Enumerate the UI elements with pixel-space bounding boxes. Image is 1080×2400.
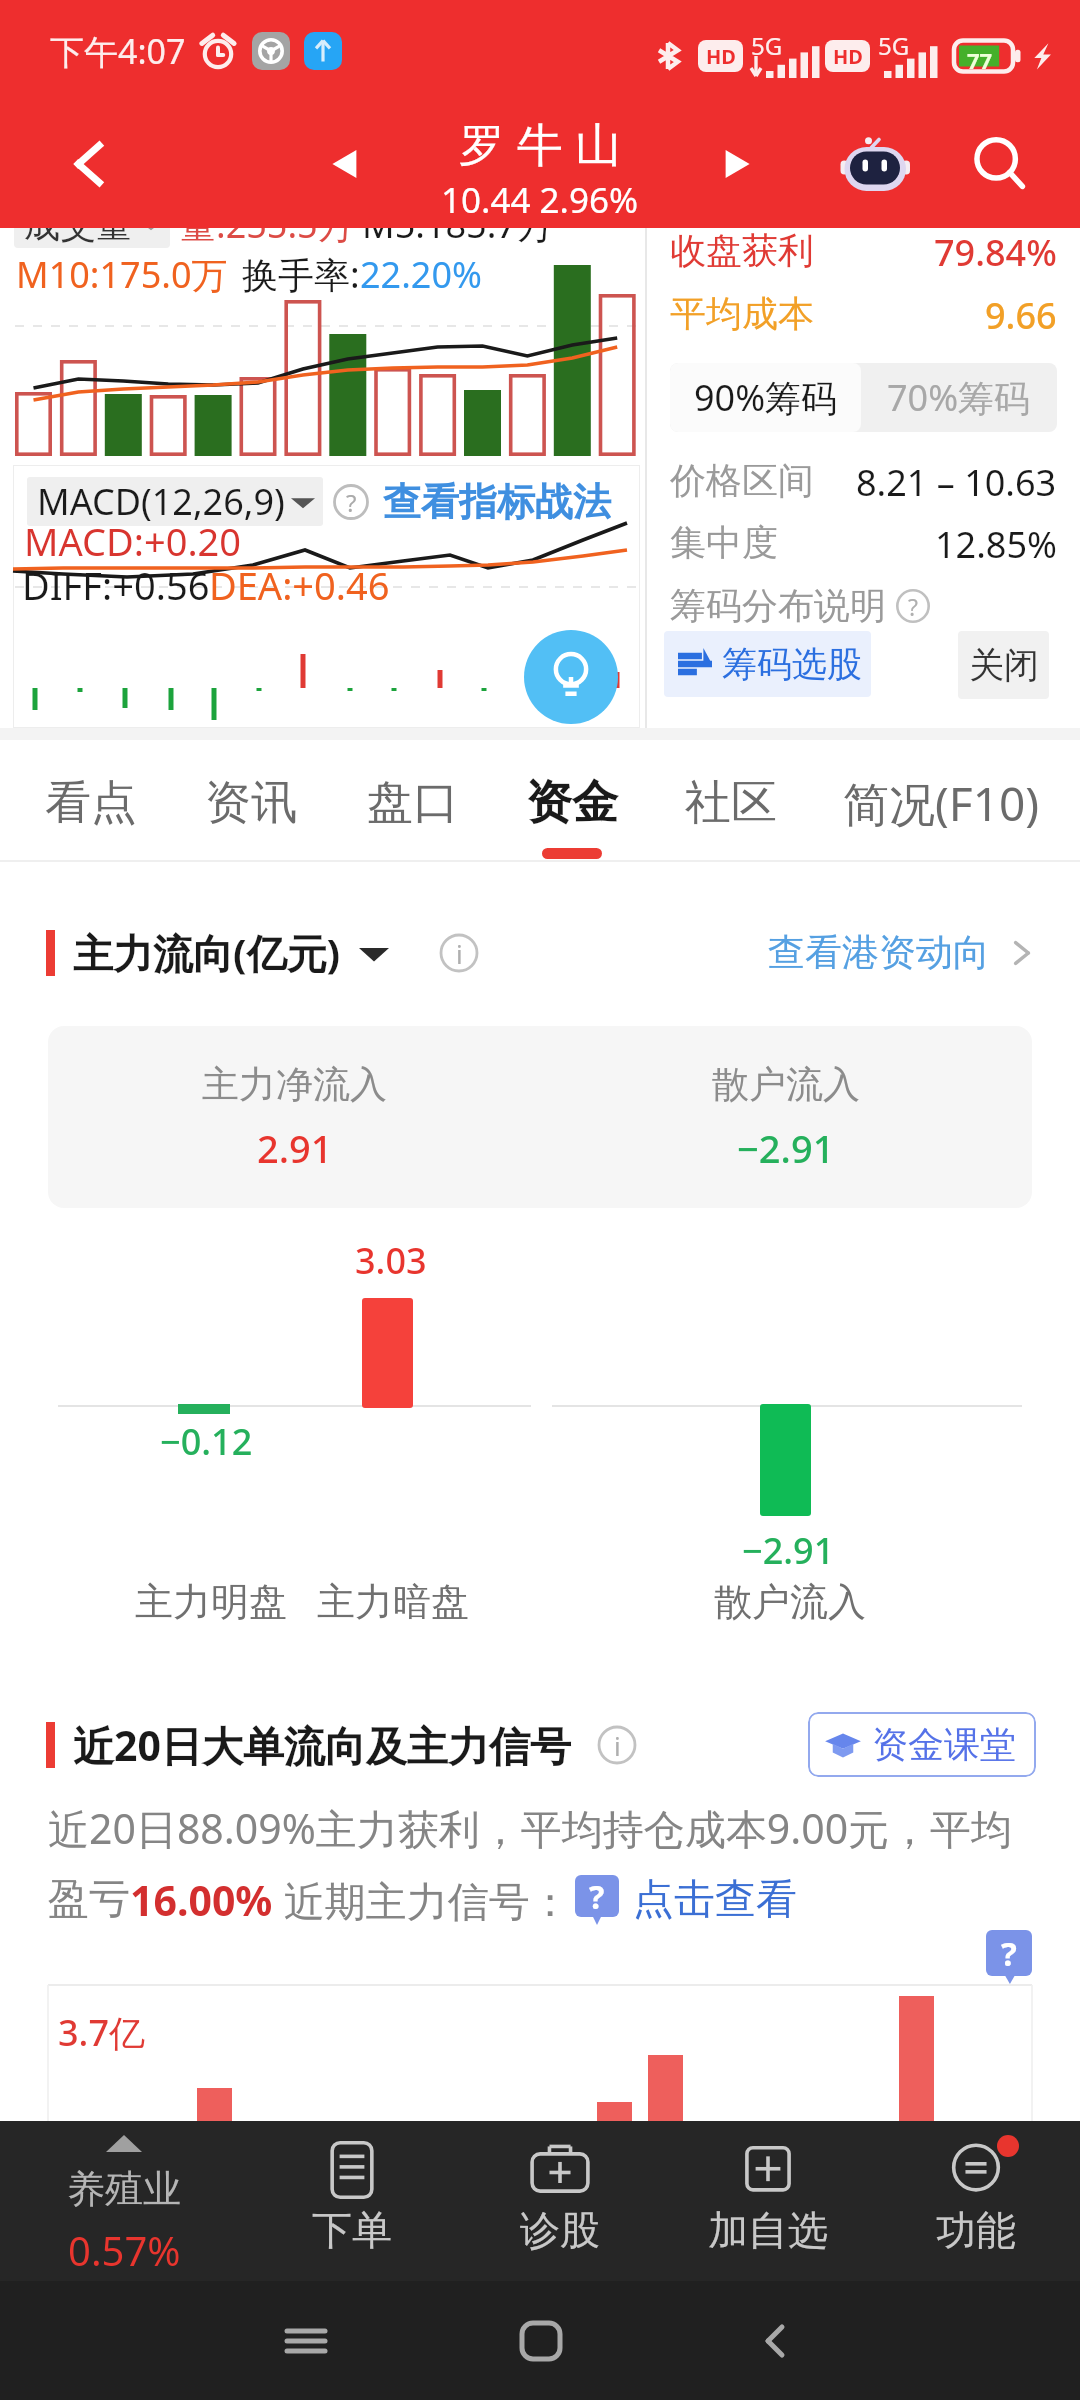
staticText: 查看港资动向 [768,929,990,976]
staticText: M10:175.0万 [16,250,228,299]
staticText: 简况(F10) [843,772,1040,835]
button[interactable]: 看点 [16,740,166,862]
staticText: 量:255.5万 [180,200,354,249]
staticText: MACD:+0.20 [24,515,242,567]
button[interactable]: Tips [524,630,618,724]
staticText: 诊股 [520,2205,600,2255]
staticText: 资讯 [205,774,297,832]
staticText: 3.03 [355,1236,427,1285]
button[interactable]: Recents [188,2281,423,2400]
button[interactable]: Home [423,2281,658,2400]
staticText: 下单 [312,2205,392,2255]
staticText: HD [833,43,863,70]
button[interactable]: 盘口 [338,740,488,862]
staticText: −0.12 [160,1417,253,1466]
button[interactable]: 资金课堂 [808,1712,1036,1777]
staticText: 10.44 2.96% [441,176,639,224]
button[interactable]: 下单 [248,2121,456,2281]
staticText: 3.7亿 [58,2008,145,2057]
button[interactable]: 90%筹码 [670,363,861,432]
button[interactable]: 资讯 [176,740,326,862]
staticText: 主力流向(亿元) [73,925,341,980]
staticText: 主力净流入 [202,1061,387,1108]
button[interactable]: Next stock [690,118,782,210]
staticText: i [456,936,463,971]
staticText: 看点 [45,774,137,832]
staticText: −2.91 [737,1122,835,1174]
staticText: 盘口 [367,774,459,832]
staticText: 0.57% [68,2223,181,2277]
staticText: 22.20% [360,250,482,299]
button[interactable]: Search [948,112,1052,216]
staticText: 社区 [685,774,777,832]
button[interactable]: 查看港资动向 [768,929,1042,976]
staticText: 散户流入 [714,1578,866,1626]
button[interactable]: 70%筹码 [861,363,1057,432]
button[interactable]: 关闭 [958,631,1049,699]
button[interactable]: 诊股 [456,2121,664,2281]
staticText: 罗 牛 山 [459,112,621,175]
button[interactable]: 简况(F10) [836,740,1046,862]
button[interactable]: AI assistant [815,104,935,224]
staticText: DEA:+0.46 [209,559,390,611]
button[interactable]: Back [658,2281,893,2400]
button[interactable]: 资金 [497,740,647,862]
button[interactable]: 筹码选股 [664,631,871,697]
staticText: 查看指标战法 [383,478,611,526]
staticText: −2.91 [742,1526,835,1575]
button[interactable]: Back [0,100,180,228]
staticText: 70%筹码 [887,373,1031,422]
staticText: 养殖业 [67,2165,181,2213]
staticText: 12.85% [935,520,1057,569]
staticText: 近20日大单流向及主力信号 [73,1717,571,1773]
staticText: 8.21 – 10.63 [856,458,1057,507]
staticText: 主力暗盘 [317,1578,469,1626]
staticText: 换手率: [242,250,360,299]
staticText: 下午4:07 [50,28,186,74]
staticText: 点击查看 [633,1874,797,1926]
staticText: 功能 [936,2205,1016,2255]
staticText: ? [1001,1931,1017,1976]
staticText: 近20日88.09%主力获利，平均持仓成本9.00元，平均 [48,1800,1013,1856]
staticText: 90%筹码 [694,373,838,422]
staticText: 关闭 [969,643,1039,687]
staticText: ? [589,1875,605,1917]
staticText: 散户流入 [712,1061,860,1108]
staticText: 平均成本 [670,291,814,336]
button[interactable]: 功能 [872,2121,1080,2281]
staticText: MACD(12,26,9) [37,477,285,526]
staticText: ? [908,591,918,622]
staticText: 价格区间 [670,458,814,503]
staticText: 79.84% [934,228,1057,277]
staticText: 5G [878,29,910,62]
staticText: 筹码选股 [722,642,862,686]
staticText: DIFF:+0.56 [22,559,210,611]
staticText: HD [706,43,736,70]
staticText: 盈亏 [48,1874,130,1926]
staticText: 16.00% [130,1872,273,1928]
button[interactable]: Help [986,1930,1032,1976]
staticText: 近期主力信号： [273,1872,571,1928]
staticText: 筹码分布说明 [670,583,886,628]
button[interactable]: 养殖业 [0,2121,248,2281]
staticText: 集中度 [670,520,778,565]
staticText: i [614,1728,621,1763]
staticText: 77 [967,45,993,75]
staticText: 5G [751,29,783,62]
staticText: 资金课堂 [872,1722,1016,1767]
staticText: 成交量 [24,202,132,247]
button[interactable]: 社区 [656,740,806,862]
staticText: 9.66 [985,291,1057,340]
staticText: 加自选 [708,2205,828,2255]
staticText: 资金 [526,774,618,832]
staticText: M5:185.7万 [362,200,553,249]
staticText: 主力明盘 [135,1578,287,1626]
staticText: ? [346,486,357,519]
staticText: 收盘获利 [670,228,814,273]
button[interactable]: 加自选 [664,2121,872,2281]
button[interactable]: MACD(12,26,9) [27,477,323,526]
button[interactable]: 成交量 [14,201,170,248]
staticText: 2.91 [257,1122,333,1174]
button[interactable]: Previous stock [300,118,392,210]
